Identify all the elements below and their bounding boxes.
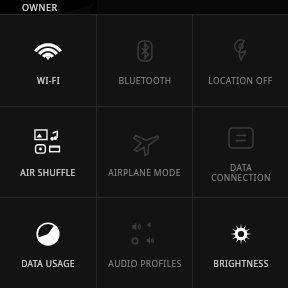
staticText: WI-FI xyxy=(37,75,60,87)
button[interactable]: AIRPLANE MODE xyxy=(97,107,192,197)
staticText: DATA USAGE xyxy=(21,258,75,270)
button[interactable]: LOCATION OFF xyxy=(193,15,288,106)
button[interactable]: AUDIO PROFILES xyxy=(97,198,192,288)
staticText: BLUETOOTH xyxy=(118,75,172,87)
staticText: BRIGHTNESS xyxy=(213,258,269,270)
button[interactable]: WI-FI xyxy=(0,15,96,106)
button[interactable]: AIR SHUFFLE xyxy=(0,107,96,197)
button[interactable]: OWNER xyxy=(0,0,288,14)
staticText: AIRPLANE MODE xyxy=(108,167,181,179)
button[interactable]: BLUETOOTH xyxy=(97,15,192,106)
staticText: OWNER xyxy=(22,1,58,13)
staticText: AUDIO PROFILES xyxy=(108,258,182,270)
button[interactable]: DATA USAGE xyxy=(0,198,96,288)
button[interactable]: DATA CONNECTION xyxy=(193,107,288,197)
staticText: AIR SHUFFLE xyxy=(20,167,76,179)
staticText: LOCATION OFF xyxy=(208,75,273,87)
button[interactable]: BRIGHTNESS xyxy=(193,198,288,288)
staticText: DATA CONNECTION xyxy=(211,162,271,184)
